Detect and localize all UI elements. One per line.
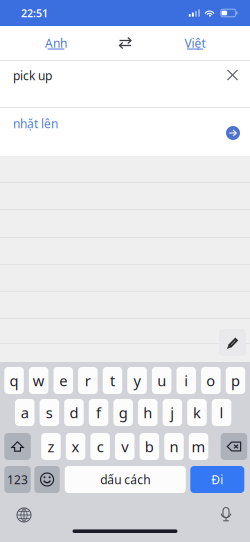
button[interactable]: q bbox=[4, 367, 24, 394]
staticText: r bbox=[85, 371, 91, 390]
button[interactable]: o bbox=[201, 367, 221, 394]
button[interactable]: s bbox=[40, 399, 59, 426]
staticText: 22:51 bbox=[21, 6, 48, 20]
button[interactable]: Anh bbox=[26, 26, 86, 60]
staticText: n bbox=[169, 437, 178, 456]
button[interactable]: f bbox=[89, 399, 108, 426]
staticText: q bbox=[10, 371, 19, 390]
staticText: 123 bbox=[7, 471, 28, 487]
staticText: u bbox=[157, 371, 166, 390]
button[interactable]: Delete bbox=[221, 433, 247, 460]
staticText: i bbox=[184, 371, 188, 390]
button[interactable]: b bbox=[140, 433, 159, 460]
button[interactable]: m bbox=[189, 433, 208, 460]
button[interactable]: Việt bbox=[165, 26, 225, 60]
button[interactable]: k bbox=[187, 399, 207, 426]
button[interactable]: Đi bbox=[190, 466, 244, 493]
button[interactable]: n bbox=[164, 433, 184, 460]
staticText: k bbox=[193, 403, 201, 422]
staticText: v bbox=[121, 437, 128, 456]
staticText: t bbox=[110, 371, 115, 390]
staticText: h bbox=[143, 403, 152, 422]
button[interactable]: d bbox=[64, 399, 84, 426]
button[interactable]: w bbox=[29, 367, 48, 394]
button[interactable]: v bbox=[115, 433, 134, 460]
staticText: w bbox=[33, 371, 45, 390]
button[interactable]: a bbox=[15, 399, 34, 426]
staticText: y bbox=[134, 371, 141, 390]
button[interactable]: j bbox=[163, 399, 182, 426]
staticText: j bbox=[170, 403, 174, 422]
button[interactable]: g bbox=[113, 399, 133, 426]
staticText: d bbox=[69, 403, 78, 422]
button[interactable]: z bbox=[41, 433, 61, 460]
button[interactable]: Clear text bbox=[227, 69, 238, 80]
button[interactable]: h bbox=[138, 399, 157, 426]
staticText: a bbox=[21, 403, 29, 422]
button[interactable]: u bbox=[152, 367, 171, 394]
staticText: o bbox=[206, 371, 215, 390]
staticText: c bbox=[97, 437, 104, 456]
button[interactable]: dấu cách bbox=[65, 466, 186, 493]
staticText: Anh bbox=[45, 35, 67, 51]
button[interactable]: Shift bbox=[4, 433, 31, 460]
button[interactable]: l bbox=[212, 399, 231, 426]
button[interactable]: x bbox=[66, 433, 85, 460]
button[interactable]: Handwriting input bbox=[219, 329, 246, 356]
button[interactable]: Change keyboard bbox=[9, 502, 39, 528]
staticText: p bbox=[231, 371, 240, 390]
staticText: Việt bbox=[184, 35, 205, 51]
staticText: pick up bbox=[13, 67, 52, 83]
button[interactable]: Open translation bbox=[226, 126, 240, 140]
staticText: nhặt lên bbox=[13, 115, 58, 131]
staticText: g bbox=[119, 403, 128, 422]
button[interactable]: Dictate bbox=[211, 502, 241, 528]
button[interactable]: c bbox=[90, 433, 110, 460]
staticText: m bbox=[191, 437, 205, 456]
button[interactable]: Emoji bbox=[34, 466, 60, 493]
staticText: s bbox=[46, 403, 53, 422]
staticText: l bbox=[220, 403, 224, 422]
button[interactable]: y bbox=[127, 367, 147, 394]
button[interactable]: Swap languages bbox=[105, 26, 145, 60]
staticText: e bbox=[59, 371, 67, 390]
staticText: f bbox=[96, 403, 101, 422]
staticText: b bbox=[145, 437, 154, 456]
staticText: z bbox=[47, 437, 54, 456]
button[interactable]: 123 bbox=[4, 466, 31, 493]
staticText: dấu cách bbox=[100, 471, 150, 487]
button[interactable]: i bbox=[176, 367, 196, 394]
staticText: Đi bbox=[211, 471, 223, 487]
button[interactable]: e bbox=[53, 367, 73, 394]
staticText: x bbox=[71, 437, 79, 456]
button[interactable]: t bbox=[103, 367, 122, 394]
button[interactable]: r bbox=[78, 367, 98, 394]
button[interactable]: p bbox=[226, 367, 245, 394]
